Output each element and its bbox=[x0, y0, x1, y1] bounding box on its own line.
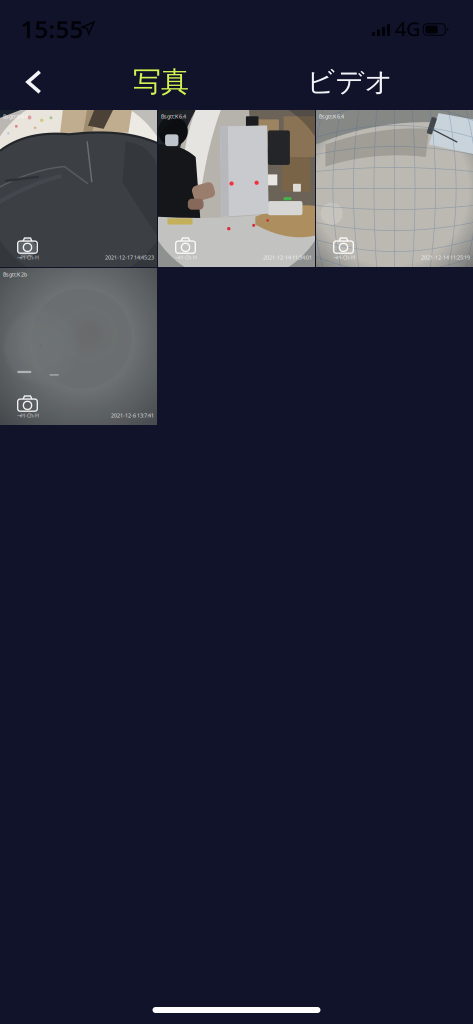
button[interactable]: ビデオ bbox=[290, 59, 410, 105]
staticText: Bsgtt:K 2b bbox=[3, 271, 27, 278]
staticText: 15:55 bbox=[20, 13, 83, 45]
staticText: 2021-12-6 13:7:41 bbox=[111, 412, 154, 419]
staticText: 2021-12-17 14:45:23 bbox=[105, 254, 154, 261]
staticText: Bsgtt:K 6.4 bbox=[319, 113, 344, 120]
button[interactable]: Photo taken 2021-12-14 11:34:01 bbox=[158, 110, 315, 267]
staticText: 写真 bbox=[133, 65, 189, 99]
staticText: Bsgtt:K 6.4 bbox=[161, 113, 186, 120]
staticText: Bsgtt:K 6.4 bbox=[3, 113, 28, 120]
staticText: 2021-12-14 11:25:19 bbox=[421, 254, 470, 261]
staticText: ビデオ bbox=[306, 65, 393, 99]
staticText: →H-Ch-H bbox=[17, 254, 39, 261]
staticText: 4G bbox=[395, 15, 421, 42]
button[interactable]: Back bbox=[3, 57, 65, 107]
button[interactable]: Photo taken 2021-12-14 11:25:19 bbox=[316, 110, 473, 267]
button[interactable]: Photo taken 2021-12-17 14:45:23 bbox=[0, 110, 157, 267]
staticText: →H-Ch-H bbox=[175, 254, 197, 261]
staticText: →H-Ch-H bbox=[333, 254, 355, 261]
button[interactable]: Photo taken 2021-12-6 13:7:41 bbox=[0, 268, 157, 425]
staticText: →H-Ch-H bbox=[17, 412, 39, 419]
button[interactable]: 写真 bbox=[109, 59, 213, 105]
staticText: 2021-12-14 11:34:01 bbox=[263, 254, 312, 261]
